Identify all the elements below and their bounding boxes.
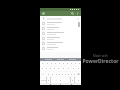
button[interactable] xyxy=(73,61,77,66)
button[interactable] xyxy=(40,26,81,31)
button[interactable] xyxy=(40,61,45,66)
button[interactable] xyxy=(40,46,81,51)
button[interactable] xyxy=(61,71,64,77)
button[interactable] xyxy=(57,61,61,66)
button[interactable] xyxy=(71,77,74,83)
button[interactable]: ?123 xyxy=(40,77,46,83)
button[interactable]: Menu xyxy=(42,12,45,15)
button[interactable] xyxy=(67,71,70,77)
staticText: Made with xyxy=(93,54,108,58)
button[interactable] xyxy=(40,21,81,26)
button[interactable] xyxy=(53,61,57,66)
button[interactable]: Menu xyxy=(40,11,81,16)
button[interactable] xyxy=(45,61,49,66)
button[interactable] xyxy=(61,61,65,66)
button[interactable] xyxy=(40,31,81,36)
button[interactable]: Back xyxy=(40,16,81,21)
button[interactable] xyxy=(49,61,53,66)
button[interactable] xyxy=(73,71,76,77)
button[interactable]: More options xyxy=(76,12,79,15)
button[interactable] xyxy=(66,66,71,71)
button[interactable] xyxy=(46,71,50,77)
button[interactable] xyxy=(40,66,44,71)
button[interactable] xyxy=(65,61,69,66)
button[interactable] xyxy=(71,66,76,71)
button[interactable] xyxy=(70,71,73,77)
button[interactable] xyxy=(76,66,81,71)
staticText: ⌫ xyxy=(77,73,80,75)
staticText: PowerDirector xyxy=(82,58,119,65)
button[interactable] xyxy=(40,41,81,46)
button[interactable] xyxy=(58,71,61,77)
button[interactable] xyxy=(61,66,66,71)
button[interactable] xyxy=(64,71,67,77)
button[interactable] xyxy=(51,77,70,83)
button[interactable] xyxy=(54,71,58,77)
button[interactable] xyxy=(44,66,48,71)
button[interactable] xyxy=(56,66,61,71)
button[interactable] xyxy=(47,77,50,83)
button[interactable] xyxy=(77,61,81,66)
button[interactable] xyxy=(50,71,54,77)
staticText: ?123 xyxy=(41,79,46,82)
button[interactable]: Back xyxy=(42,17,45,20)
button[interactable] xyxy=(52,66,56,71)
button[interactable]: Search xyxy=(71,12,74,15)
button[interactable] xyxy=(40,36,81,41)
button[interactable] xyxy=(75,77,81,83)
button[interactable]: ⌫ xyxy=(76,71,81,77)
button[interactable] xyxy=(69,61,73,66)
button[interactable] xyxy=(48,66,52,71)
button[interactable]: ⇧ xyxy=(40,71,46,77)
